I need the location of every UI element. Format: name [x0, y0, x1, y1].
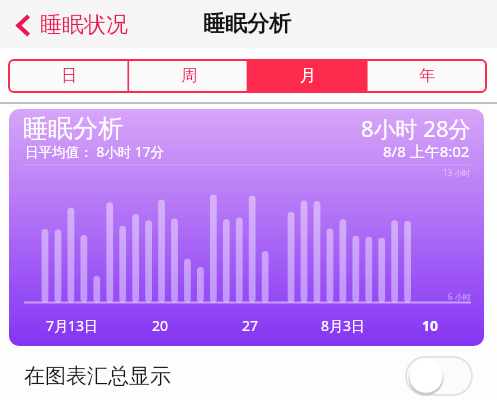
staticText: 年	[419, 66, 435, 86]
staticText: 8/8 上午8:02	[383, 141, 470, 161]
button[interactable]: 在图表汇总显示	[0, 352, 497, 400]
button[interactable]: 周	[129, 60, 248, 92]
staticText: 6 小时	[448, 291, 471, 302]
staticText: 睡眠分析	[23, 113, 123, 144]
staticText: 8小时 28分	[361, 113, 471, 143]
staticText: 睡眠状况	[40, 11, 128, 39]
button[interactable]: Show in chart summary toggle	[406, 357, 472, 395]
button[interactable]: 日	[9, 60, 129, 92]
staticText: 睡眠分析	[203, 10, 291, 38]
staticText: 在图表汇总显示	[24, 363, 171, 389]
staticText: 13 小时	[443, 167, 471, 178]
button[interactable]: 月	[248, 60, 367, 92]
button[interactable]: 睡眠状况	[9, 6, 136, 44]
staticText: 日	[61, 66, 77, 86]
staticText: 日平均值： 8小时 17分	[25, 142, 165, 161]
staticText: 7月13日	[46, 316, 99, 335]
staticText: 27	[242, 316, 259, 335]
staticText: 8月3日	[321, 316, 366, 335]
staticText: 周	[181, 66, 197, 86]
staticText: 20	[152, 316, 169, 335]
staticText: 10	[422, 316, 439, 335]
staticText: 月	[300, 66, 316, 86]
button[interactable]: 年	[367, 60, 486, 92]
